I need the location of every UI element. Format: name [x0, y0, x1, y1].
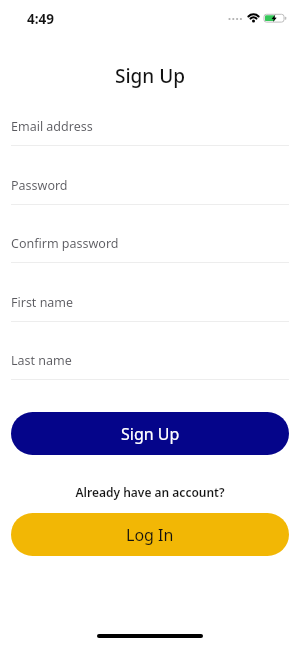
- staticText: Sign Up: [0, 63, 300, 89]
- staticText: First name: [11, 294, 74, 311]
- staticText: Confirm password: [11, 235, 119, 252]
- staticText: Email address: [11, 118, 93, 135]
- staticText: 4:49: [27, 10, 54, 28]
- staticText: Password: [11, 177, 68, 194]
- button[interactable]: Confirm password: [11, 233, 289, 263]
- button[interactable]: First name: [11, 292, 289, 322]
- button[interactable]: Password: [11, 175, 289, 205]
- staticText: Sign Up: [121, 423, 180, 445]
- staticText: Log In: [126, 524, 174, 546]
- button[interactable]: Sign Up: [11, 412, 289, 455]
- button[interactable]: Last name: [11, 350, 289, 380]
- button[interactable]: Log In: [11, 513, 289, 556]
- staticText: Last name: [11, 352, 72, 369]
- staticText: Already have an account?: [0, 484, 300, 500]
- button[interactable]: Email address: [11, 116, 289, 146]
